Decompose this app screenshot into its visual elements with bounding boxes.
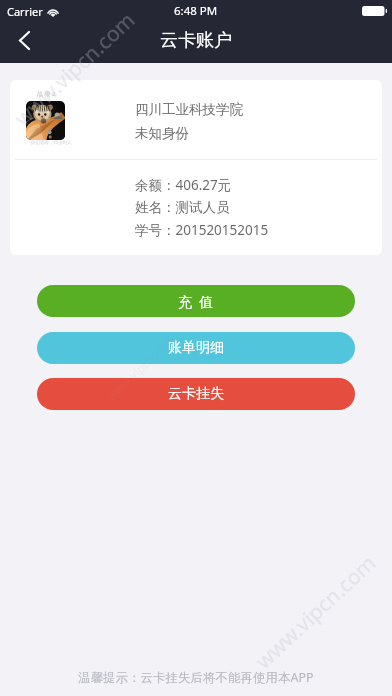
- staticText: Carrier: [7, 4, 43, 19]
- staticText: 四川工业科技学院: [135, 101, 243, 118]
- staticText: 温馨提示：云卡挂失后将不能再使用本APP: [78, 669, 314, 686]
- button[interactable]: 账单明细: [37, 332, 355, 364]
- staticText: www.vipcn.com: [102, 331, 178, 404]
- staticText: 充 值: [178, 292, 214, 311]
- staticText: www.vipcn.com: [249, 549, 382, 675]
- button[interactable]: 充 值: [37, 285, 355, 317]
- staticText: 云卡挂失: [168, 385, 224, 403]
- button[interactable]: Back: [2, 20, 46, 61]
- staticText: 你们等着，我去叫人: [31, 140, 72, 146]
- staticText: 战 狼 2: [37, 90, 56, 98]
- staticText: 余额：406.27元: [135, 176, 232, 194]
- staticText: 学号：201520152015: [135, 221, 269, 239]
- staticText: www.vipcn.com: [8, 6, 141, 132]
- staticText: 姓名：测试人员: [135, 199, 230, 216]
- staticText: 账单明细: [168, 339, 224, 357]
- staticText: 未知身份: [135, 125, 189, 142]
- staticText: 6:48 PM: [174, 3, 218, 19]
- staticText: 云卡账户: [160, 29, 232, 52]
- button[interactable]: 云卡挂失: [37, 378, 355, 410]
